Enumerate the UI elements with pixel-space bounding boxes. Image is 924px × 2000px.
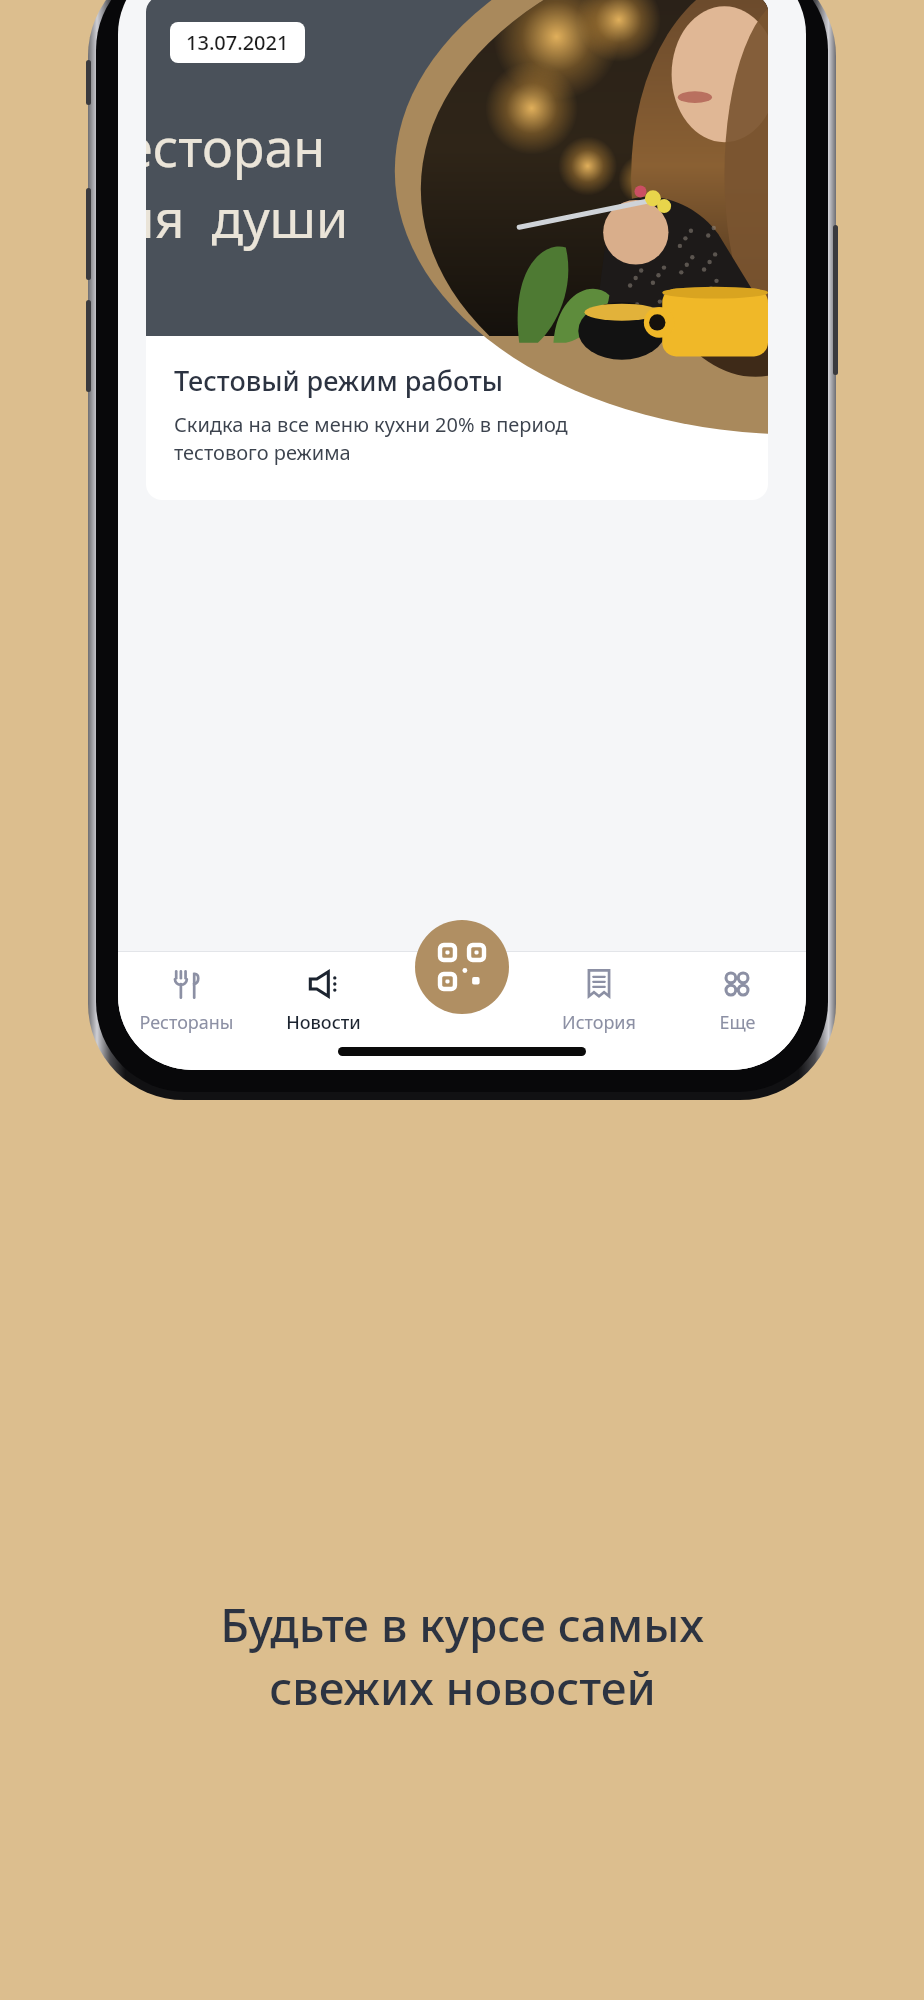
staticText: есторан: [146, 111, 326, 182]
button[interactable]: Рестораны: [118, 952, 255, 1070]
staticText: Будьте в курсе самых: [220, 1593, 704, 1656]
staticText: ля души: [146, 182, 349, 253]
staticText: 13.07.2021: [186, 29, 289, 56]
button[interactable]: История: [530, 952, 668, 1070]
button[interactable]: Scan QR code: [415, 920, 509, 1014]
staticText: Новости: [286, 1010, 361, 1035]
staticText: Скидка на все меню кухни 20% в период те…: [174, 411, 568, 466]
staticText: Тестовый режим работы: [174, 362, 504, 399]
staticText: Рестораны: [139, 1010, 234, 1035]
staticText: История: [562, 1010, 636, 1035]
button[interactable]: Еще: [668, 952, 806, 1070]
button[interactable]: Новости: [255, 952, 392, 1070]
staticText: свежих новостей: [269, 1656, 656, 1719]
staticText: Еще: [719, 1010, 756, 1035]
